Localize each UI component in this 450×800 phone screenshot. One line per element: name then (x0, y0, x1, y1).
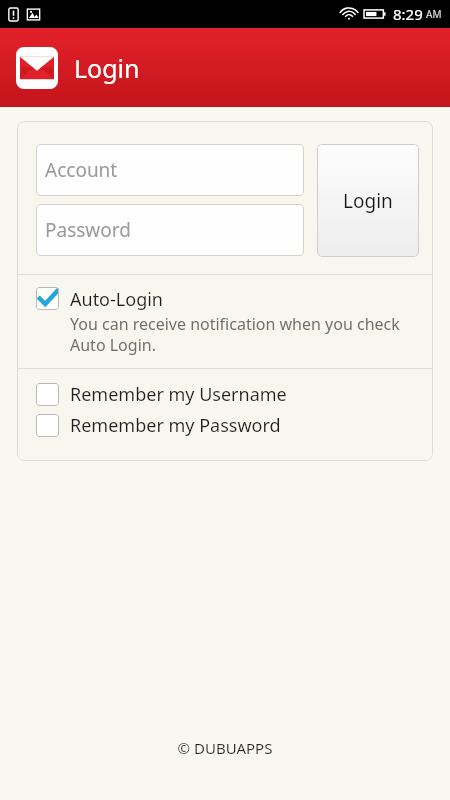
staticText: Password (45, 217, 131, 243)
other: App icon (16, 47, 58, 89)
staticText: You can receive notification when you ch… (70, 313, 417, 356)
button[interactable]: Login (317, 144, 419, 257)
button[interactable]: Account (36, 144, 304, 196)
button[interactable]: Auto-Login (17, 275, 433, 368)
button[interactable]: Password (36, 204, 304, 256)
button[interactable]: Remember my Username (36, 381, 433, 408)
staticText: Login (74, 51, 140, 85)
staticText: AM (426, 7, 442, 21)
staticText: 8:29 (393, 4, 423, 24)
staticText: Auto-Login (70, 287, 163, 312)
staticText: Account (45, 157, 118, 183)
staticText: Remember my Password (70, 413, 281, 438)
staticText: Remember my Username (70, 382, 287, 407)
staticText: Login (343, 188, 393, 214)
button[interactable]: Remember my Password (36, 412, 433, 439)
staticText: © DUBUAPPS (0, 738, 450, 758)
